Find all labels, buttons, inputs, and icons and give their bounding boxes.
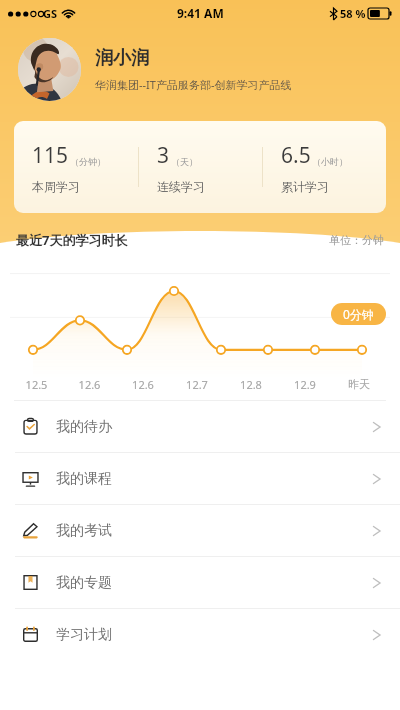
button[interactable]: 学习计划 (0, 609, 400, 660)
staticText: 0分钟 (343, 306, 374, 322)
button[interactable]: 0分钟 (331, 303, 386, 325)
staticText: 我的专题 (56, 574, 112, 592)
staticText: 润小润 (95, 47, 149, 70)
staticText: 12.6 (116, 377, 170, 392)
staticText: 12.7 (170, 377, 224, 392)
button[interactable]: 我的考试 (0, 505, 400, 556)
staticText: 12.8 (224, 377, 278, 392)
button[interactable]: 润小润 (0, 26, 400, 112)
staticText: （分钟） (70, 156, 106, 167)
staticText: 昨天 (332, 377, 386, 391)
staticText: 我的待办 (56, 418, 112, 436)
staticText: 连续学习 (157, 179, 205, 194)
staticText: 累计学习 (281, 179, 329, 194)
button[interactable]: 我的课程 (0, 453, 400, 504)
staticText: 华润集团--IT产品服务部-创新学习产品线 (95, 77, 292, 92)
staticText: 我的考试 (56, 522, 112, 540)
staticText: 本周学习 (32, 179, 80, 194)
staticText: 12.9 (278, 377, 332, 392)
staticText: GS (43, 6, 58, 21)
button[interactable]: 115 (14, 121, 386, 213)
staticText: 学习计划 (56, 626, 112, 644)
staticText: 最近7天的学习时长 (16, 231, 128, 249)
staticText: 3 (157, 141, 170, 170)
staticText: 单位：分钟 (329, 233, 384, 247)
staticText: 12.6 (63, 377, 116, 392)
button[interactable]: 我的待办 (0, 401, 400, 452)
staticText: 58 % (340, 6, 366, 21)
button[interactable]: 我的专题 (0, 557, 400, 608)
staticText: 我的课程 (56, 470, 112, 488)
staticText: （小时） (312, 156, 348, 167)
staticText: 6.5 (281, 141, 311, 170)
staticText: 115 (32, 141, 69, 170)
staticText: 9:41 AM (177, 5, 224, 21)
staticText: （天） (171, 156, 198, 167)
staticText: 12.5 (10, 377, 63, 392)
